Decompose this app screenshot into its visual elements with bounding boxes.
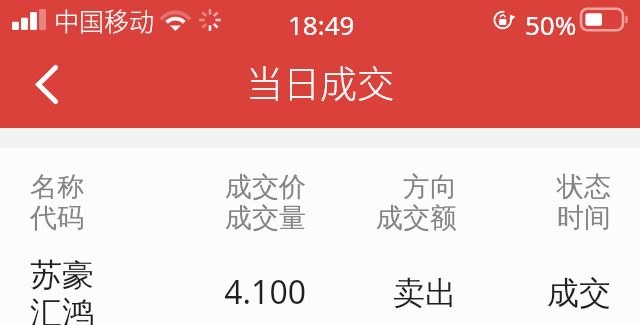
staticText (30, 270, 172, 314)
staticText (306, 255, 457, 299)
staticText (30, 273, 172, 317)
staticText: 苏豪 (30, 255, 172, 295)
staticText: 中国移动 (54, 2, 155, 38)
staticText: 状态 (457, 170, 611, 204)
staticText: 卖出 (306, 273, 457, 313)
staticText: 4.100 (172, 270, 306, 314)
staticText (457, 270, 611, 314)
staticText: 时间 (457, 201, 611, 235)
staticText: 成交量 (172, 201, 306, 235)
staticText: 名称 (30, 170, 172, 204)
staticText (172, 273, 306, 317)
staticText: 成交 (457, 273, 611, 313)
staticText (457, 293, 611, 325)
staticText (306, 293, 457, 325)
button[interactable]: Back (0, 41, 94, 128)
staticText: 汇鸿 (30, 293, 172, 325)
staticText: 代码 (30, 201, 172, 235)
staticText: 成交价 (172, 170, 306, 204)
staticText: 成交额 (306, 201, 457, 235)
staticText (457, 255, 611, 299)
staticText (172, 255, 306, 299)
staticText: 50% (525, 7, 577, 42)
staticText (172, 293, 306, 325)
staticText (306, 270, 457, 314)
staticText: 方向 (306, 170, 457, 204)
button[interactable]: 苏豪 (0, 245, 640, 325)
staticText: 当日成交 (246, 55, 394, 109)
staticText: 18:49 (288, 7, 355, 42)
